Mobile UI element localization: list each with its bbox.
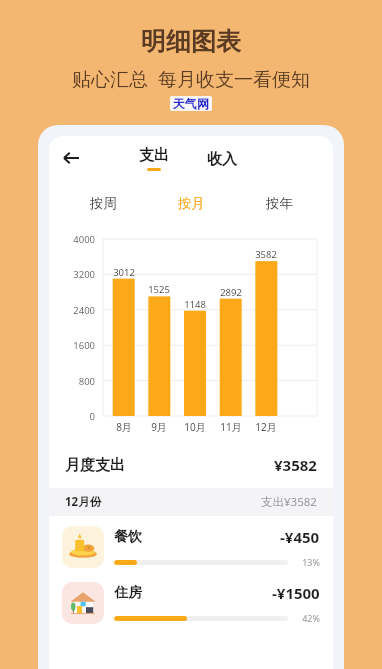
button[interactable]: 按月 (147, 180, 235, 226)
staticText: 餐饮 (114, 528, 142, 546)
staticText: 贴心汇总 每月收支一看便知 (72, 66, 310, 92)
button[interactable]: 按年 (235, 180, 323, 226)
staticText: -¥450 (280, 527, 320, 547)
staticText: 9月 (139, 420, 179, 434)
button[interactable]: 餐饮 (49, 524, 333, 570)
staticText: 明细图表 (141, 26, 241, 57)
staticText: 天气网 (173, 96, 209, 111)
staticText: ¥3582 (274, 455, 317, 475)
staticText: 4000 (49, 233, 95, 246)
button[interactable]: 住房 (49, 580, 333, 626)
staticText: 按周 (90, 195, 117, 212)
staticText: 3200 (49, 268, 95, 281)
staticText: 住房 (114, 584, 142, 602)
staticText: 月度支出 (65, 456, 125, 475)
staticText: -¥1500 (272, 583, 320, 603)
staticText: 800 (49, 375, 95, 388)
staticText: 按月 (178, 195, 205, 212)
staticText: 3012 (104, 266, 144, 279)
staticText: 支出 (139, 146, 169, 165)
staticText: 收入 (207, 150, 237, 169)
button[interactable]: 按周 (59, 180, 147, 226)
staticText: 按年 (266, 195, 293, 212)
button[interactable]: Back (57, 144, 85, 172)
button[interactable]: 月度支出 (49, 442, 333, 488)
staticText: 12月份 (65, 494, 102, 510)
staticText: 13% (294, 556, 320, 568)
button[interactable]: 支出 (139, 146, 169, 171)
staticText: 11月 (211, 420, 251, 434)
staticText: 2892 (211, 286, 251, 299)
staticText: 12月 (246, 420, 286, 434)
staticText: 8月 (104, 420, 144, 434)
staticText: 1600 (49, 339, 95, 352)
staticText: 42% (294, 612, 320, 624)
staticText: 支出¥3582 (261, 494, 317, 510)
button[interactable]: 收入 (207, 150, 237, 169)
staticText: 3582 (246, 248, 286, 261)
staticText: 1148 (175, 298, 215, 311)
staticText: 0 (49, 410, 95, 423)
staticText: 1525 (139, 283, 179, 296)
staticText: 2400 (49, 304, 95, 317)
staticText: 10月 (175, 420, 215, 434)
